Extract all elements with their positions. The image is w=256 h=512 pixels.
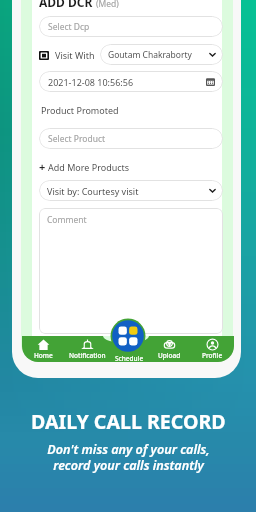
staticText: Product Promoted	[41, 104, 119, 116]
button[interactable]: Profile	[191, 336, 233, 362]
staticText: Comment	[47, 214, 87, 226]
button[interactable]: Home	[22, 336, 64, 362]
staticText: Home	[34, 351, 53, 360]
button[interactable]: Select Product	[39, 128, 223, 149]
staticText: Don't miss any of your calls, record you…	[47, 441, 210, 474]
staticText: 2021-12-08 10:56:56	[48, 76, 134, 88]
staticText: Visit by: Courtesy visit	[47, 185, 139, 197]
button[interactable]: Upload	[148, 336, 190, 362]
staticText: Visit With	[55, 49, 95, 61]
staticText: Profile	[202, 351, 223, 360]
staticText: Notification	[69, 351, 106, 360]
button[interactable]: Goutam Chakraborty	[100, 44, 223, 65]
button[interactable]: Visit by: Courtesy visit	[39, 180, 223, 201]
button[interactable]: Schedule	[110, 318, 146, 354]
staticText: ADD DCR	[39, 0, 93, 10]
staticText: Select Product	[48, 133, 106, 145]
button[interactable]: 2021-12-08 10:56:56	[39, 71, 223, 92]
staticText: DAILY CALL RECORD	[31, 408, 226, 435]
staticText: (Med)	[96, 0, 119, 10]
button[interactable]: Schedule	[108, 336, 150, 362]
staticText: Schedule	[115, 354, 144, 362]
button[interactable]: Notification	[66, 336, 108, 362]
staticText: +	[39, 159, 46, 174]
button[interactable]: Select Dcp	[39, 16, 223, 37]
staticText: Upload	[158, 351, 181, 360]
staticText: Select Dcp	[48, 21, 90, 33]
button[interactable]: Comment	[39, 208, 223, 334]
staticText: Goutam Chakraborty	[108, 49, 192, 61]
staticText: Add More Products	[48, 161, 130, 173]
